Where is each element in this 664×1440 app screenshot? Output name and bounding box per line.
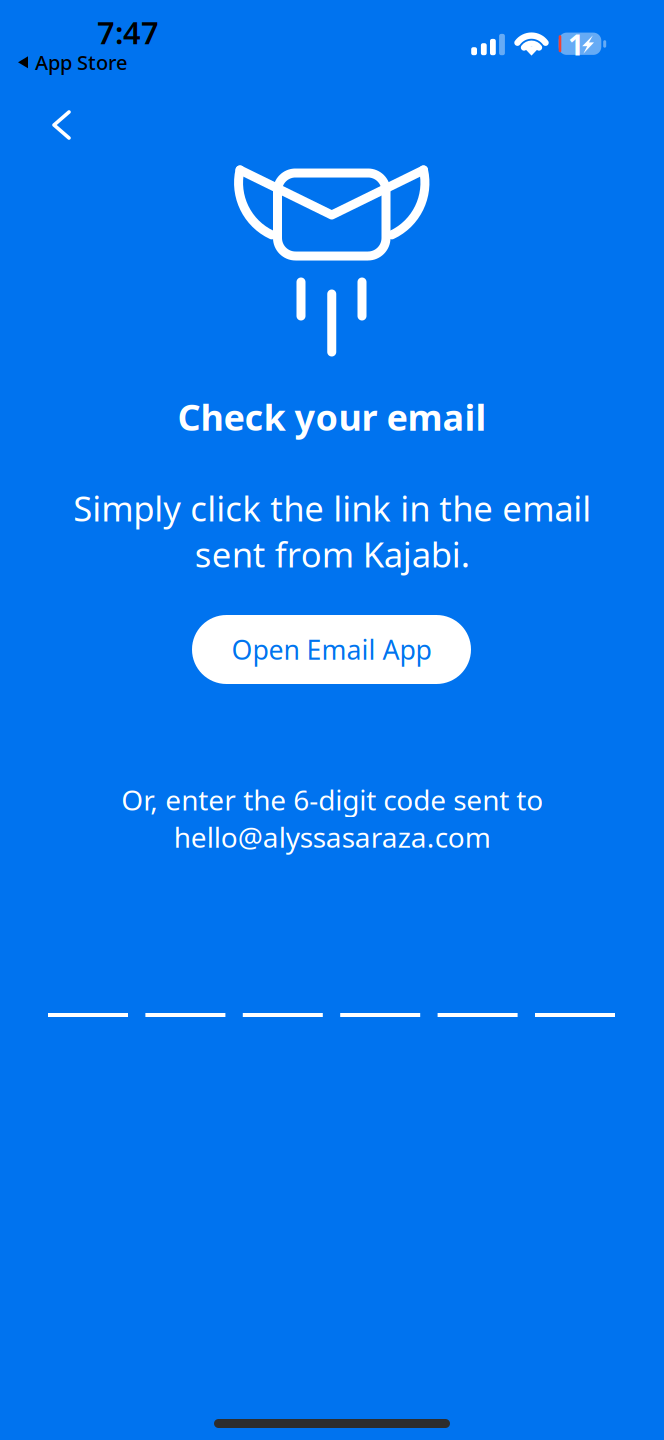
staticText: 7:47	[97, 12, 159, 53]
button[interactable]: Enter 6-digit code	[48, 1013, 615, 1017]
button[interactable]: Open Email App	[192, 615, 471, 684]
staticText: 1	[568, 26, 584, 63]
staticText: Or, enter the 6-digit code sent to hello…	[121, 781, 543, 855]
staticText: Check your email	[177, 393, 486, 441]
button[interactable]: App Store	[18, 49, 127, 76]
staticText: App Store	[35, 49, 127, 76]
button[interactable]: Back	[28, 95, 96, 155]
staticText: Simply click the link in the email sent …	[73, 485, 591, 577]
staticText: Open Email App	[231, 632, 431, 667]
